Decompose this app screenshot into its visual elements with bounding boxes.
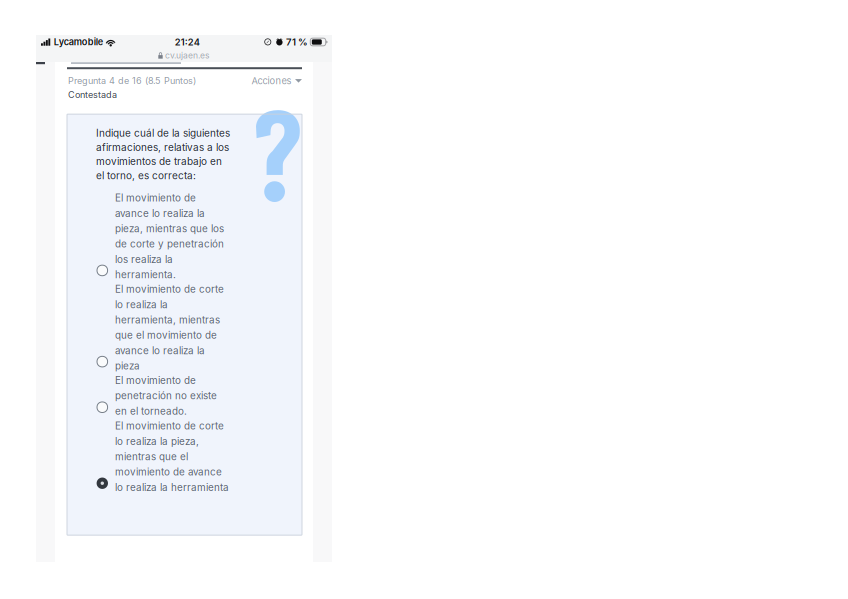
staticText: afirmaciones, relativas a los <box>96 141 229 153</box>
staticText: cv.ujaen.es <box>165 50 210 61</box>
button[interactable]: El movimiento de <box>95 374 302 420</box>
staticText: 21:24 <box>175 36 200 48</box>
staticText: El movimiento de corte <box>115 420 224 432</box>
staticText: los realiza la <box>115 253 173 265</box>
staticText: penetración no existe <box>115 390 217 402</box>
staticText: Pregunta 4 de 16 (8.5 Puntos) <box>68 75 196 86</box>
staticText: lo realiza la herramienta <box>115 481 229 493</box>
staticText: avance lo realiza la <box>115 207 205 219</box>
staticText: pieza, mientras que los <box>115 223 224 235</box>
button[interactable]: El movimiento de corte <box>95 283 302 374</box>
staticText: lo realiza la <box>115 299 168 310</box>
staticText: El movimiento de corte <box>115 283 224 295</box>
staticText: lo realiza la pieza, <box>115 435 199 447</box>
staticText: pieza <box>115 360 140 372</box>
staticText: movimiento de avance <box>115 466 222 478</box>
staticText: Contestada <box>68 89 117 100</box>
staticText: avance lo realiza la <box>115 345 205 356</box>
staticText: herramienta, mientras <box>115 314 220 326</box>
button[interactable]: Acciones <box>251 75 302 86</box>
staticText: movimientos de trabajo en <box>96 155 222 167</box>
staticText: Indique cuál de la siguientes <box>96 127 230 139</box>
button[interactable]: El movimiento de <box>95 192 302 283</box>
staticText: 71 % <box>286 36 308 48</box>
staticText: Lycamobile <box>54 36 103 47</box>
button[interactable]: El movimiento de corte <box>95 420 302 496</box>
staticText: Acciones <box>251 75 291 86</box>
staticText: el torno, es correcta: <box>96 169 196 181</box>
staticText: El movimiento de <box>115 374 196 386</box>
staticText: en el torneado. <box>115 405 187 417</box>
staticText: que el movimiento de <box>115 329 217 341</box>
staticText: El movimiento de <box>115 192 196 204</box>
staticText: de corte y penetración <box>115 238 224 250</box>
staticText: herramienta. <box>115 269 176 281</box>
staticText: mientras que el <box>115 451 188 463</box>
